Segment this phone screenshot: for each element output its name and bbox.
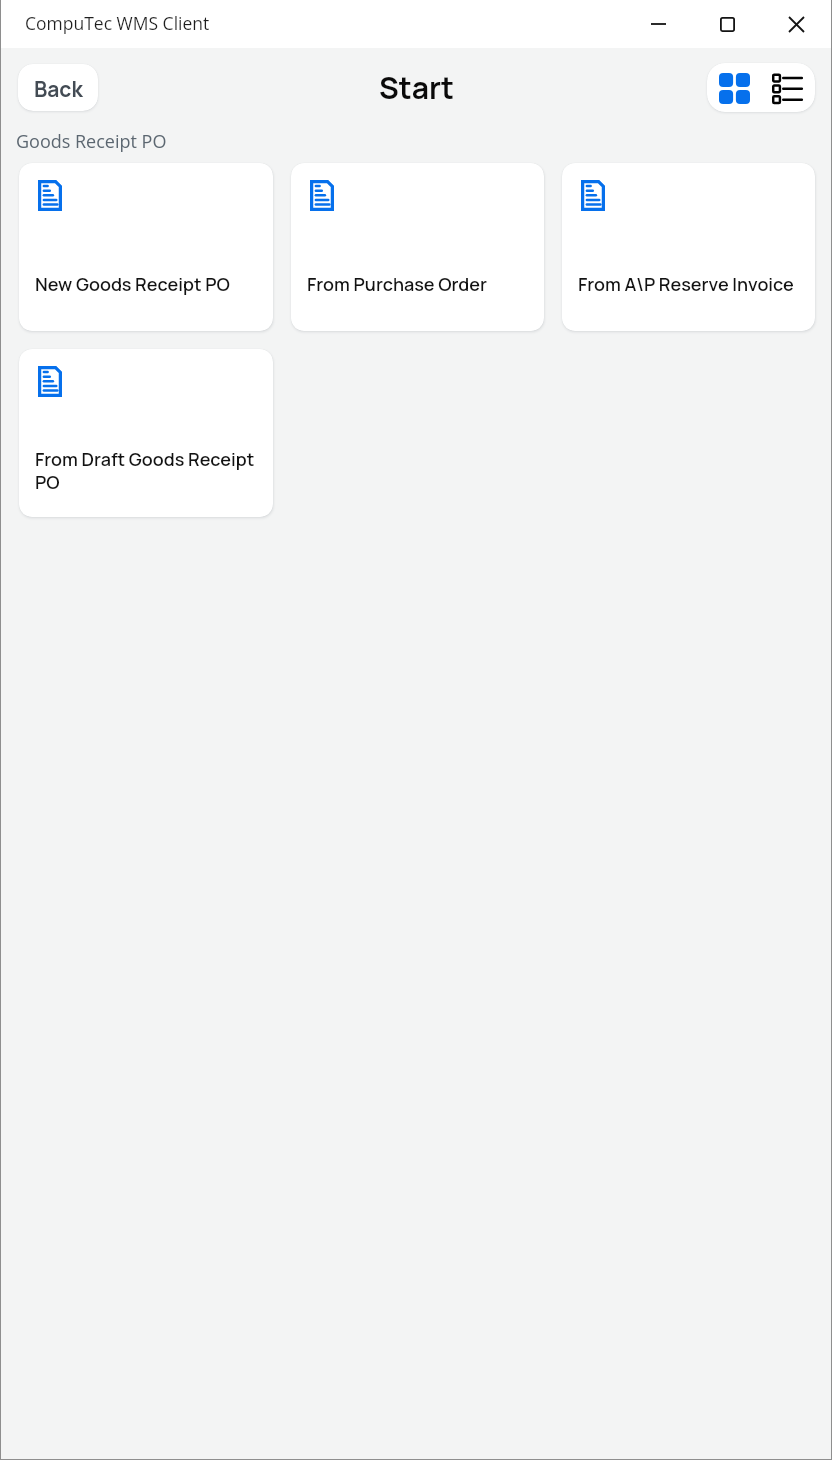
button[interactable]: From Purchase Order — [291, 163, 544, 331]
staticText: CompuTec WMS Client — [25, 11, 210, 35]
button[interactable]: Maximize — [693, 2, 762, 46]
staticText: From Draft Goods Receipt PO — [35, 447, 261, 494]
staticText: Back — [34, 75, 83, 104]
staticText: New Goods Receipt PO — [35, 272, 230, 297]
staticText: Start — [379, 67, 454, 108]
button[interactable]: Back — [18, 64, 98, 111]
button[interactable]: From A\P Reserve Invoice — [562, 163, 815, 331]
button[interactable]: Close — [762, 2, 831, 46]
staticText: Goods Receipt PO — [16, 129, 167, 154]
button[interactable]: New Goods Receipt PO — [19, 163, 273, 331]
button[interactable]: Minimize — [624, 2, 693, 46]
staticText: From Purchase Order — [307, 272, 487, 297]
button[interactable]: From Draft Goods Receipt PO — [19, 349, 273, 517]
button[interactable]: List view — [761, 63, 815, 112]
button[interactable]: Grid view — [707, 63, 761, 112]
staticText: From A\P Reserve Invoice — [578, 272, 794, 297]
